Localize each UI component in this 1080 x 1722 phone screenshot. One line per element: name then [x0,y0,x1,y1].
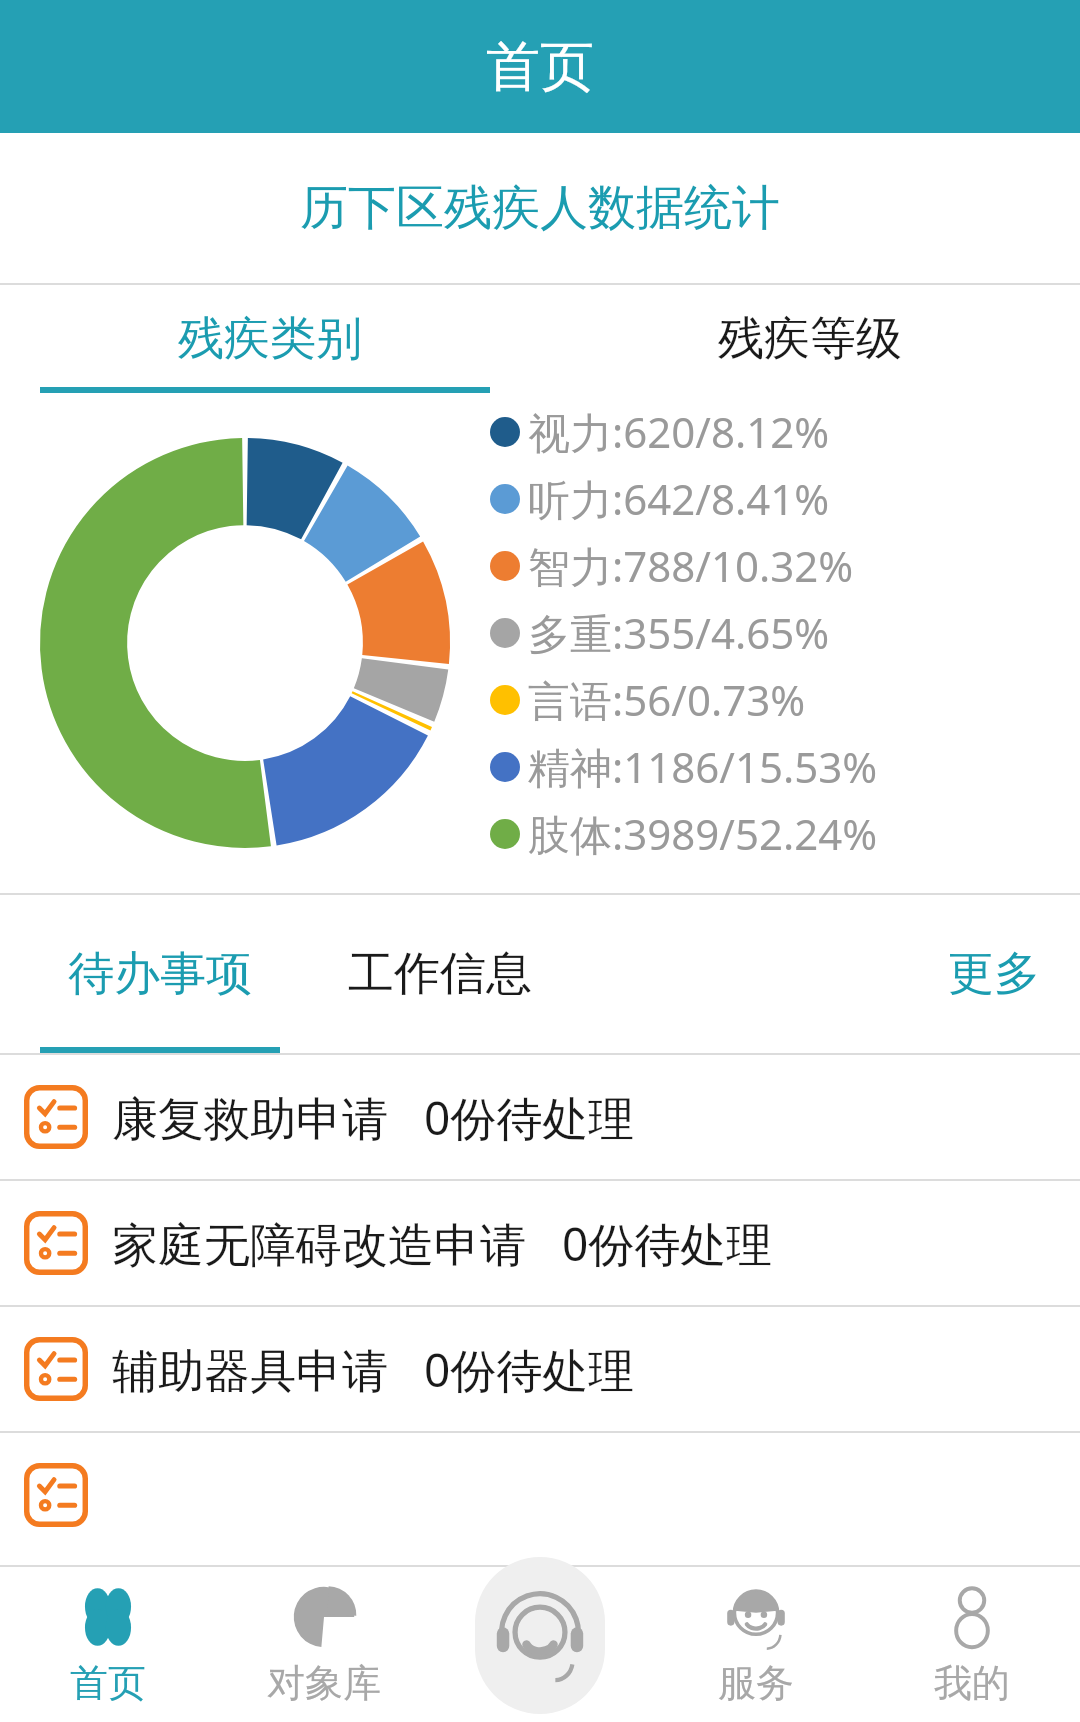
button[interactable]: 服务 [648,1565,864,1722]
staticText: 残疾类别 [178,310,362,368]
staticText: 待办事项 [68,945,252,1003]
staticText: 听力:642/8.41% [528,470,830,527]
button[interactable]: 我的 [864,1565,1080,1722]
staticText: 精神:1186/15.53% [528,738,878,795]
staticText: 对象库 [267,1659,381,1707]
button[interactable]: 家庭无障碍改造申请 0份待处理 [0,1181,1080,1305]
staticText: 智力:788/10.32% [528,537,854,594]
button[interactable] [0,1433,1080,1557]
staticText: 更多 [948,945,1040,1003]
staticText: 我的 [934,1659,1010,1707]
staticText: 肢体:3989/52.24% [528,805,878,862]
staticText: 首页 [486,33,594,101]
button[interactable]: 残疾等级 [540,285,1080,393]
button[interactable]: 待办事项 [40,895,280,1053]
button[interactable]: 康复救助申请 0份待处理 [0,1055,1080,1179]
staticText: 首页 [70,1659,146,1707]
button[interactable]: 对象库 [216,1565,432,1722]
button[interactable]: 首页 [0,1565,216,1722]
button[interactable]: 工作信息 [280,895,600,1053]
button[interactable]: 残疾类别 [0,285,540,393]
staticText: 辅助器具申请 0份待处理 [112,1338,635,1401]
button[interactable]: 更多 [948,895,1040,1053]
staticText: 康复救助申请 0份待处理 [112,1086,635,1149]
staticText: 历下区残疾人数据统计 [300,178,780,238]
staticText: 言语:56/0.73% [528,671,806,728]
staticText: 工作信息 [348,945,532,1003]
button[interactable]: 辅助器具申请 0份待处理 [0,1307,1080,1431]
staticText: 视力:620/8.12% [528,403,830,460]
staticText: 家庭无障碍改造申请 0份待处理 [112,1212,773,1275]
staticText: 残疾等级 [718,310,902,368]
button[interactable]: 客服 [432,1565,648,1722]
staticText: 服务 [718,1659,794,1707]
staticText: 多重:355/4.65% [528,604,830,661]
